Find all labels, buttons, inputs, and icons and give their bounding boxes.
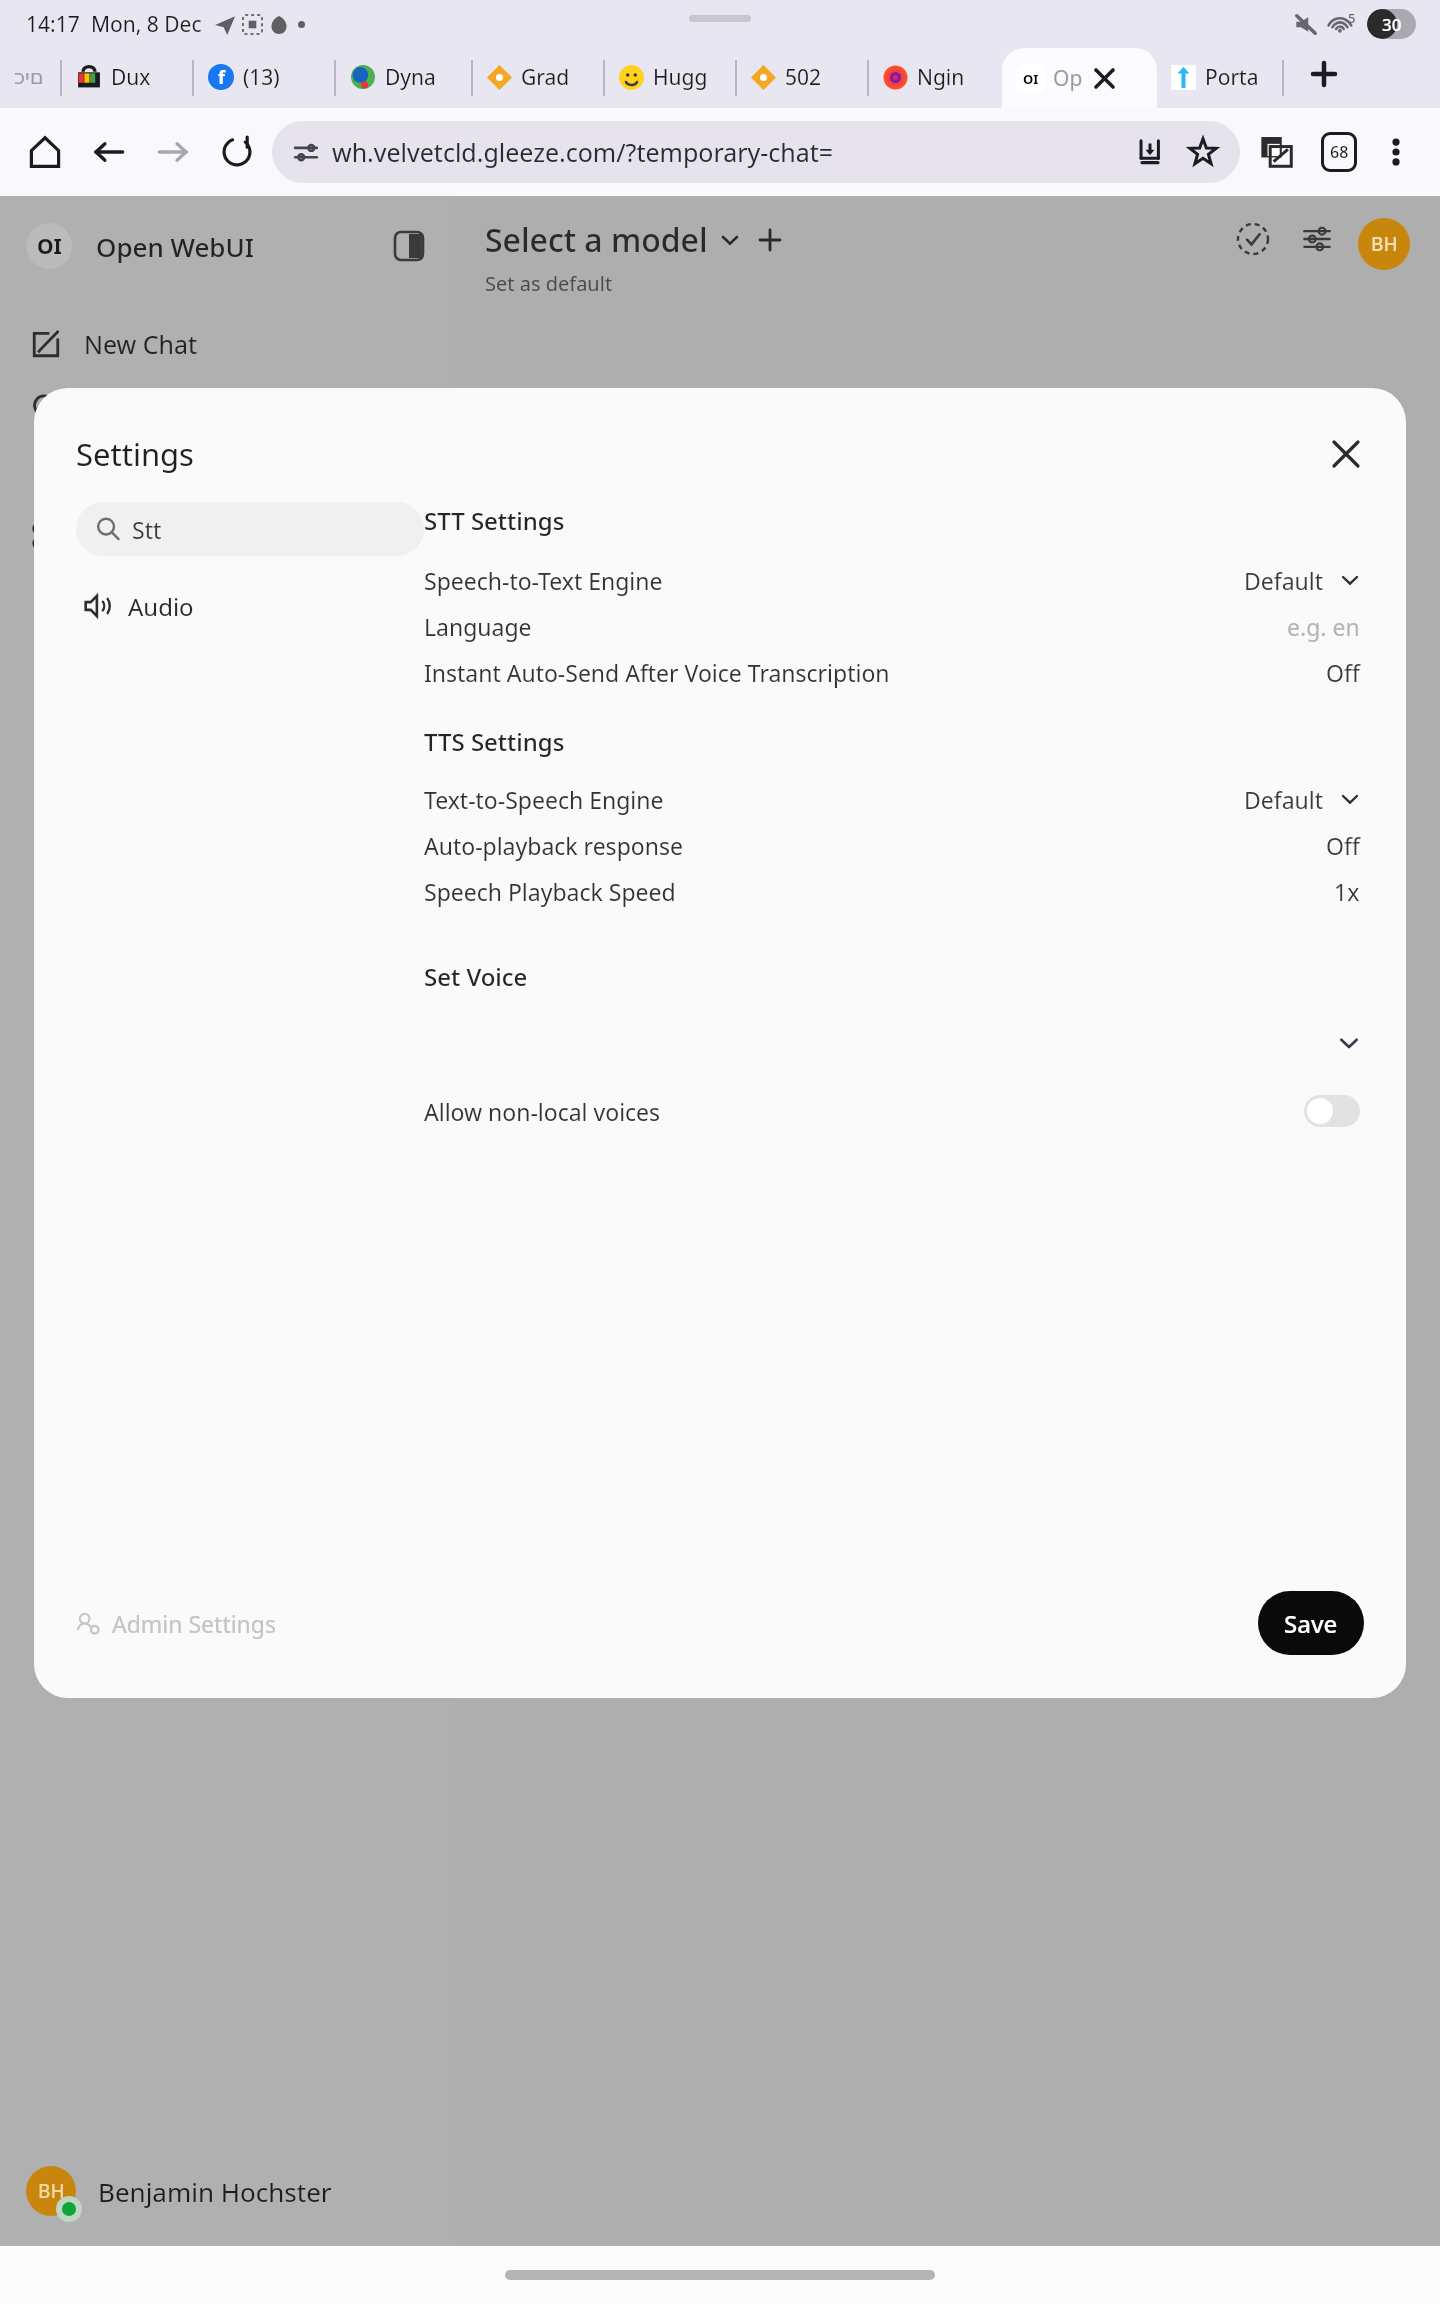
button[interactable]: Select a model: [485, 218, 782, 262]
staticText: Off: [1326, 657, 1360, 688]
staticText: 502: [785, 63, 822, 92]
button[interactable]: Dux: [62, 48, 192, 108]
button[interactable]: Reload: [214, 129, 260, 175]
staticText: Off: [1326, 830, 1360, 861]
staticText: Select a model: [485, 218, 708, 262]
staticText: Allow non-local voices: [424, 1096, 661, 1127]
button[interactable]: Hugg: [605, 48, 735, 108]
staticText: Language: [424, 611, 532, 642]
button[interactable]: OI: [1002, 48, 1157, 108]
button[interactable]: Close tab: [1089, 63, 1119, 93]
button[interactable]: Porta: [1157, 48, 1282, 108]
button[interactable]: Auto-playback response: [424, 822, 1360, 868]
staticText: BH: [1371, 231, 1398, 257]
button[interactable]: םיכ: [0, 48, 60, 108]
button[interactable]: Grad: [473, 48, 603, 108]
staticText: Dyna: [385, 63, 436, 92]
button[interactable]: BH: [0, 2136, 455, 2246]
button[interactable]: Bookmark: [1188, 137, 1218, 167]
staticText: Save: [1284, 1607, 1338, 1640]
button[interactable]: Chat controls: [1296, 218, 1338, 260]
button[interactable]: Allow non-local voices: [424, 1083, 1360, 1139]
staticText: Stt: [132, 514, 162, 545]
staticText: wh.velvetcld.gleeze.com/?temporary-chat=: [332, 135, 834, 169]
button[interactable]: f: [194, 48, 334, 108]
button[interactable]: Audio: [76, 578, 424, 634]
staticText: OI: [37, 232, 62, 261]
staticText: TTS Settings: [424, 725, 565, 758]
staticText: Speech-to-Text Engine: [424, 565, 663, 596]
staticText: New Chat: [84, 327, 198, 361]
staticText: 5: [1348, 9, 1356, 27]
staticText: Dux: [111, 63, 151, 92]
staticText: Auto-playback response: [424, 830, 683, 861]
staticText: Hugg: [653, 63, 708, 92]
button[interactable]: Close: [1322, 430, 1370, 478]
staticText: Speech Playback Speed: [424, 876, 676, 907]
button[interactable]: New Chat: [0, 312, 455, 376]
staticText: Mon, 8 Dec: [91, 10, 202, 39]
staticText: Notes: [84, 455, 154, 489]
button[interactable]: Instant Auto-Send After Voice Transcript…: [424, 649, 1360, 695]
button[interactable]: Search: [0, 376, 455, 440]
button[interactable]: Temporary chat: [1232, 218, 1274, 260]
staticText: Instant Auto-Send After Voice Transcript…: [424, 657, 890, 688]
button[interactable]: BH: [1358, 218, 1410, 270]
staticText: Porta: [1205, 63, 1259, 92]
button[interactable]: Back: [86, 129, 132, 175]
button[interactable]: Translate: [1254, 129, 1300, 175]
button[interactable]: Forward: [150, 129, 196, 175]
staticText: 30: [1382, 13, 1402, 36]
button[interactable]: More options: [1374, 130, 1418, 174]
button[interactable]: Speech-to-Text Engine: [424, 557, 1360, 603]
button[interactable]: Language: [424, 603, 1360, 649]
button[interactable]: Download: [1136, 138, 1164, 166]
staticText: f: [218, 65, 225, 90]
staticText: Grad: [521, 63, 570, 92]
button[interactable]: Save: [1258, 1591, 1364, 1655]
button[interactable]: Stt: [76, 502, 424, 556]
button[interactable]: Ngin: [869, 48, 1002, 108]
staticText: Open WebUI: [96, 229, 254, 264]
button[interactable]: 502: [737, 48, 867, 108]
staticText: 14:17: [26, 10, 80, 39]
staticText: Workspace: [84, 519, 214, 553]
button[interactable]: New tab: [1284, 48, 1364, 108]
button[interactable]: Tabs: 68: [1318, 131, 1360, 173]
staticText: Settings: [76, 433, 194, 475]
button[interactable]: Notes: [0, 440, 455, 504]
staticText: Default: [1244, 784, 1324, 815]
staticText: Set Voice: [424, 960, 528, 993]
button[interactable]: Admin Settings: [76, 1608, 276, 1639]
button[interactable]: Dyna: [336, 48, 471, 108]
staticText: STT Settings: [424, 504, 565, 537]
button[interactable]: wh.velvetcld.gleeze.com/?temporary-chat=: [272, 121, 1240, 183]
staticText: Ngin: [917, 63, 965, 92]
staticText: BH: [38, 2178, 65, 2204]
staticText: OI: [1023, 70, 1039, 88]
staticText: םיכ: [14, 65, 44, 89]
staticText: Admin Settings: [112, 1608, 276, 1639]
staticText: Folders: [34, 588, 107, 617]
staticText: (13): [243, 63, 280, 92]
staticText: Audio: [128, 590, 194, 623]
button[interactable]: Workspace: [0, 504, 455, 568]
button[interactable]: Text-to-Speech Engine: [424, 776, 1360, 822]
button[interactable]: [424, 1017, 1360, 1069]
button[interactable]: Toggle sidebar: [389, 226, 429, 266]
staticText: Default: [1244, 565, 1324, 596]
staticText: e.g. en: [1287, 611, 1360, 642]
button[interactable]: Speech Playback Speed: [424, 868, 1360, 914]
staticText: Op: [1053, 64, 1083, 93]
staticText: Text-to-Speech Engine: [424, 784, 664, 815]
button[interactable]: Home: [22, 129, 68, 175]
staticText: 68: [1330, 141, 1349, 163]
staticText: Benjamin Hochster: [98, 2174, 332, 2209]
staticText: 1x: [1334, 876, 1360, 907]
staticText: Set as default: [485, 270, 613, 297]
